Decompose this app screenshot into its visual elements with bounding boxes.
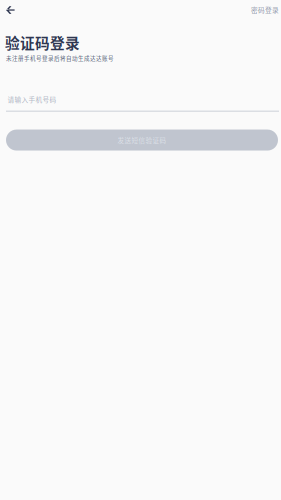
button[interactable]: 发送短信验证码: [6, 130, 278, 151]
button[interactable]: 密码登录: [251, 0, 281, 19]
staticText: 未注册手机号登录后将自动生成达达账号: [6, 54, 114, 62]
staticText: 发送短信验证码: [117, 135, 166, 145]
staticText: 验证码登录: [5, 32, 80, 53]
staticText: 请输入手机号码: [8, 95, 57, 104]
staticText: 密码登录: [251, 5, 279, 15]
button[interactable]: Back: [0, 1, 24, 18]
